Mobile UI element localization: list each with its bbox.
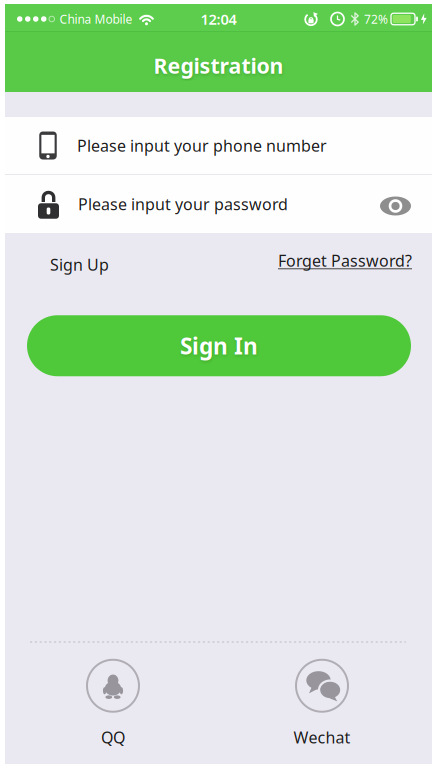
button[interactable]: QQ bbox=[68, 660, 158, 748]
staticText: Please input your phone number bbox=[77, 135, 327, 156]
staticText: 12:04 bbox=[200, 9, 236, 29]
button[interactable]: Please input your phone number bbox=[5, 117, 432, 174]
button[interactable]: Please input your password bbox=[5, 175, 372, 233]
staticText: Please input your password bbox=[78, 193, 288, 215]
staticText: Sign Up bbox=[50, 254, 109, 275]
staticText: Wechat bbox=[293, 727, 350, 748]
button[interactable]: Forget Password? bbox=[278, 252, 412, 273]
staticText: Registration bbox=[153, 51, 283, 80]
staticText: Sign In bbox=[180, 331, 258, 361]
staticText: Forget Password? bbox=[278, 250, 412, 271]
staticText: 72% bbox=[364, 11, 388, 27]
button[interactable]: Show password bbox=[372, 175, 432, 233]
button[interactable]: Wechat bbox=[277, 660, 367, 748]
staticText: QQ bbox=[101, 727, 125, 748]
staticText: China Mobile bbox=[59, 11, 132, 27]
button[interactable]: Sign Up bbox=[50, 252, 109, 273]
button[interactable]: Sign In bbox=[27, 315, 411, 376]
